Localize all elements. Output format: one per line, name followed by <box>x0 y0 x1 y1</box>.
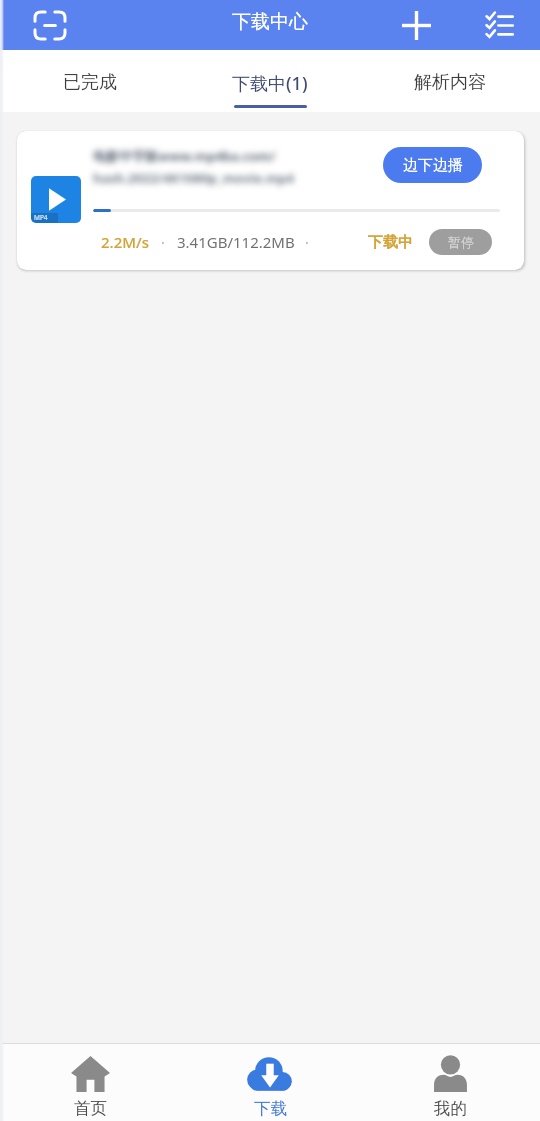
button[interactable]: 我的 <box>360 1044 540 1121</box>
staticText: MP4 <box>34 213 48 222</box>
button[interactable]: Select items <box>477 3 521 47</box>
staticText: · <box>305 233 309 252</box>
button[interactable]: 解析内容 <box>360 50 540 112</box>
staticText: 暂停 <box>448 234 474 250</box>
button[interactable]: 下载中(1) <box>180 50 360 112</box>
button[interactable]: 边下边播 <box>383 147 482 183</box>
button[interactable]: Scan <box>28 3 72 47</box>
staticText: 解析内容 <box>414 71 486 94</box>
button[interactable]: 首页 <box>0 1044 180 1121</box>
staticText: 我的 <box>434 1098 467 1119</box>
staticText: 下载中(1) <box>232 71 308 96</box>
staticText: · <box>161 233 165 252</box>
button[interactable]: 已完成 <box>0 50 180 112</box>
staticText: hash.2022/4K1080p_movie.mp4 <box>93 169 294 187</box>
button[interactable]: 暂停 <box>429 229 492 255</box>
button[interactable]: MP4 <box>17 131 524 270</box>
staticText: 下载中 <box>368 233 413 252</box>
staticText: 电影中字版www.mp4ba.com/ <box>93 147 276 165</box>
button[interactable]: Add <box>394 3 438 47</box>
staticText: 首页 <box>74 1098 107 1119</box>
staticText: 2.2M/s <box>101 232 150 252</box>
staticText: 已完成 <box>63 71 117 94</box>
staticText: 边下边播 <box>403 156 463 175</box>
button[interactable]: 下载 <box>180 1044 360 1121</box>
staticText: 下载中心 <box>232 10 308 34</box>
staticText: 3.41GB/112.2MB <box>177 232 295 252</box>
staticText: 下载 <box>254 1098 287 1119</box>
